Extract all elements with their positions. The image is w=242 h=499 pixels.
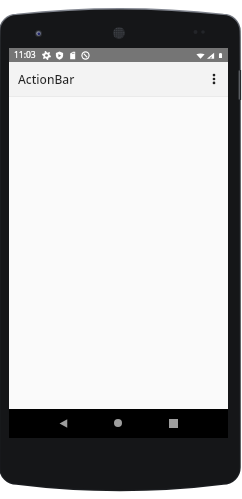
staticText: 11:03 [14,49,36,61]
button[interactable]: Recents [162,412,184,434]
button[interactable]: Home [107,412,129,434]
staticText: ActionBar [18,71,75,87]
button[interactable]: More options [203,68,225,90]
button[interactable]: Back [52,412,74,434]
